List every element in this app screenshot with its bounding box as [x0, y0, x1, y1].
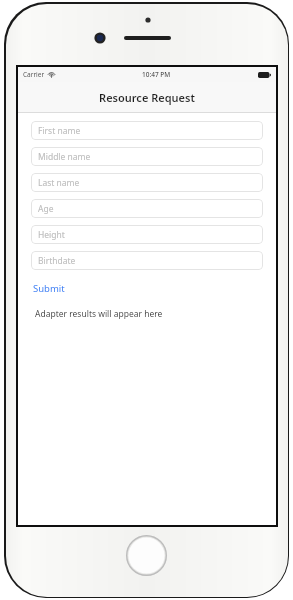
button[interactable]: Submit [31, 279, 67, 298]
staticText: 10:47 PM [142, 70, 171, 79]
button[interactable]: Last name [31, 173, 263, 192]
staticText: Resource Request [99, 90, 195, 105]
button[interactable]: Age [31, 199, 263, 218]
staticText: First name [38, 125, 81, 137]
staticText: Age [38, 203, 54, 215]
staticText: Height [38, 229, 65, 241]
staticText: Middle name [38, 151, 91, 163]
button[interactable]: Birthdate [31, 251, 263, 270]
button[interactable]: Middle name [31, 147, 263, 166]
staticText: Submit [33, 282, 65, 295]
staticText: Birthdate [38, 255, 76, 267]
staticText: Carrier [23, 70, 45, 79]
button[interactable]: First name [31, 121, 263, 140]
staticText: Last name [38, 177, 80, 189]
button[interactable]: Height [31, 225, 263, 244]
other: Home [126, 535, 167, 576]
staticText: Adapter results will appear here [35, 308, 163, 320]
